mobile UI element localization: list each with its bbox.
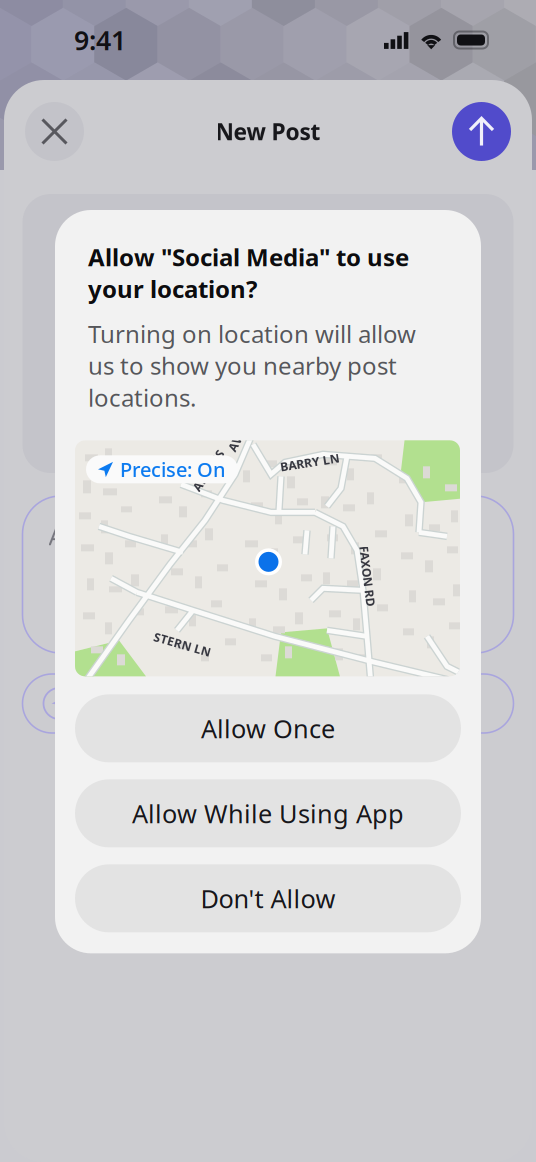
button[interactable]: Don't Allow <box>75 864 461 932</box>
staticText: BARRY LN <box>280 454 340 470</box>
staticText: Precise: On <box>120 456 226 483</box>
button[interactable]: Allow While Using App <box>75 779 461 847</box>
button[interactable]: Allow Once <box>75 694 461 762</box>
staticText: Add a caption… <box>48 520 222 552</box>
staticText: STERN LN <box>153 636 212 652</box>
button[interactable]: Post <box>452 102 511 161</box>
staticText: 9:41 <box>74 22 126 58</box>
staticText: AVE <box>225 432 248 448</box>
staticText: FAXON RD <box>337 568 398 584</box>
staticText: ATHENS <box>185 462 232 478</box>
staticText: Allow While Using App <box>132 796 404 830</box>
staticText: Allow Once <box>201 711 335 745</box>
staticText: New Post <box>215 116 320 146</box>
staticText: Allow "Social Media" to use your locatio… <box>88 241 409 305</box>
staticText: Don't Allow <box>200 881 335 915</box>
button[interactable]: Close <box>25 102 84 161</box>
staticText: Turning on location will allow us to sho… <box>88 318 416 413</box>
